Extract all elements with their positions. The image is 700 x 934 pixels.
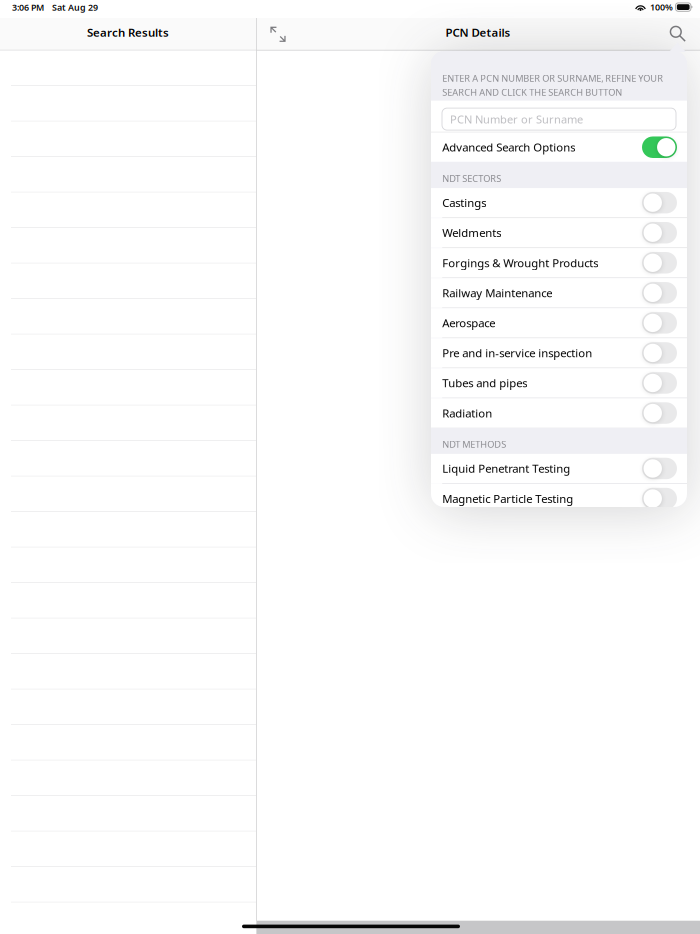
staticText: NDT SECTORS (442, 172, 501, 185)
staticText: PCN Number or Surname (450, 112, 583, 127)
button[interactable]: Tubes and pipes (431, 368, 687, 398)
staticText: Magnetic Particle Testing (442, 491, 573, 506)
button[interactable] (0, 903, 256, 934)
staticText: 100% (650, 1, 673, 13)
staticText: Search Results (87, 24, 169, 40)
staticText: SEARCH AND CLICK THE SEARCH BUTTON (442, 86, 622, 98)
button[interactable]: Search (657, 17, 697, 50)
staticText: 3:06 PM (12, 1, 44, 13)
button[interactable]: Weldments (431, 218, 687, 247)
button[interactable]: Liquid Penetrant Testing (431, 454, 687, 483)
staticText: PCN Details (445, 24, 510, 40)
button[interactable]: Castings (431, 188, 687, 217)
button[interactable]: Railway Maintenance (431, 278, 687, 307)
staticText: Liquid Penetrant Testing (442, 461, 570, 476)
button[interactable]: Pre and in-service inspection (431, 338, 687, 367)
staticText: Weldments (442, 225, 501, 240)
staticText: Tubes and pipes (442, 375, 527, 391)
button[interactable]: Radiation (431, 398, 687, 428)
staticText: Radiation (442, 405, 492, 421)
button[interactable]: Ultrasonic Testing (431, 514, 687, 543)
staticText: Forgings & Wrought Products (442, 255, 598, 270)
staticText: NDT METHODS (442, 438, 506, 450)
staticText: Railway Maintenance (442, 285, 552, 300)
button[interactable]: Aerospace (431, 308, 687, 337)
staticText: Advanced Search Options (442, 139, 575, 155)
staticText: Sat Aug 29 (52, 1, 98, 13)
button[interactable]: Advanced Search Options (431, 133, 687, 162)
button[interactable]: Magnetic Particle Testing (431, 484, 687, 513)
staticText: ENTER A PCN NUMBER OR SURNAME, REFINE YO… (442, 72, 663, 84)
staticText: Aerospace (442, 315, 495, 331)
staticText: Castings (442, 195, 486, 210)
button[interactable]: Enter full screen (256, 18, 300, 51)
button[interactable]: Forgings & Wrought Products (431, 248, 687, 277)
staticText: Pre and in-service inspection (442, 345, 592, 361)
